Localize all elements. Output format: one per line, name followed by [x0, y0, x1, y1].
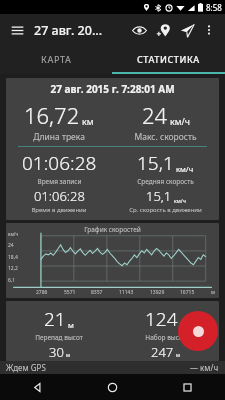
button[interactable]: Recent apps	[150, 374, 225, 400]
staticText: 24	[8, 242, 14, 249]
staticText: 15,1	[137, 150, 174, 176]
button[interactable]: Add location	[151, 18, 175, 42]
staticText: СТАТИСТИКА	[137, 53, 200, 65]
button[interactable]: Record track	[178, 311, 218, 351]
staticText: — км/ч	[190, 362, 219, 373]
staticText: Набор высот	[145, 333, 186, 342]
staticText: 8357	[91, 289, 103, 296]
staticText: 5571	[64, 289, 76, 296]
staticText: м	[68, 320, 74, 330]
staticText: м	[176, 351, 180, 358]
staticText: 24	[142, 100, 168, 130]
staticText: 27 авг. 2015 г. 7:28:01 AM	[6, 82, 219, 96]
staticText: Время записи	[37, 177, 82, 186]
staticText: км/ч	[170, 116, 190, 128]
staticText: 6,1	[8, 277, 16, 284]
button[interactable]: Home	[75, 374, 150, 400]
staticText: 12,2	[8, 265, 18, 272]
staticText: км	[82, 116, 94, 128]
staticText: 11143	[119, 289, 134, 296]
staticText: 01:06:28	[22, 150, 97, 176]
staticText: 01:06:28	[34, 187, 85, 205]
staticText: 21	[44, 306, 66, 332]
staticText: км/ч	[176, 164, 194, 174]
staticText: Средняя скорость	[137, 177, 194, 186]
staticText: Ждем GPS	[6, 362, 46, 373]
button[interactable]: 27 авг. 2015 г. 7:28:01 AM	[6, 78, 219, 220]
staticText: Время в движении	[31, 206, 87, 214]
button[interactable]: 21	[6, 301, 219, 361]
button[interactable]: Navigate	[175, 18, 199, 42]
staticText: Макс. скорость	[134, 131, 197, 143]
button[interactable]: СТАТИСТИКА	[112, 46, 225, 72]
staticText: 27 авг. 20…	[34, 22, 127, 39]
staticText: 15,1	[146, 187, 172, 205]
staticText: Длина трека	[33, 131, 85, 143]
button[interactable]: Open navigation drawer	[6, 19, 28, 41]
staticText: 124	[145, 306, 178, 332]
staticText: КАРТА	[41, 53, 72, 65]
staticText: м	[211, 289, 215, 296]
staticText: График скоростей	[6, 225, 219, 234]
staticText: Перепад высот	[35, 333, 83, 342]
button[interactable]: График скоростей	[6, 223, 219, 298]
staticText: м	[180, 320, 186, 330]
button[interactable]: More options	[199, 20, 219, 40]
button[interactable]: КАРТА	[0, 46, 112, 72]
staticText: м	[66, 351, 70, 358]
staticText: 18,4	[8, 254, 18, 261]
staticText: 30	[49, 343, 64, 359]
staticText: 8:58	[206, 2, 222, 13]
button[interactable]: Visibility	[127, 18, 151, 42]
staticText: км/ч	[174, 197, 186, 204]
staticText: 16,72	[24, 100, 80, 130]
staticText: 16715	[180, 289, 195, 296]
staticText: Ср. скорость в движении	[129, 206, 202, 214]
staticText: 13929	[150, 289, 165, 296]
staticText: 2786	[36, 289, 48, 296]
staticText: км/ч	[8, 231, 19, 237]
button[interactable]: Back	[0, 374, 75, 400]
staticText: 247	[151, 343, 174, 359]
